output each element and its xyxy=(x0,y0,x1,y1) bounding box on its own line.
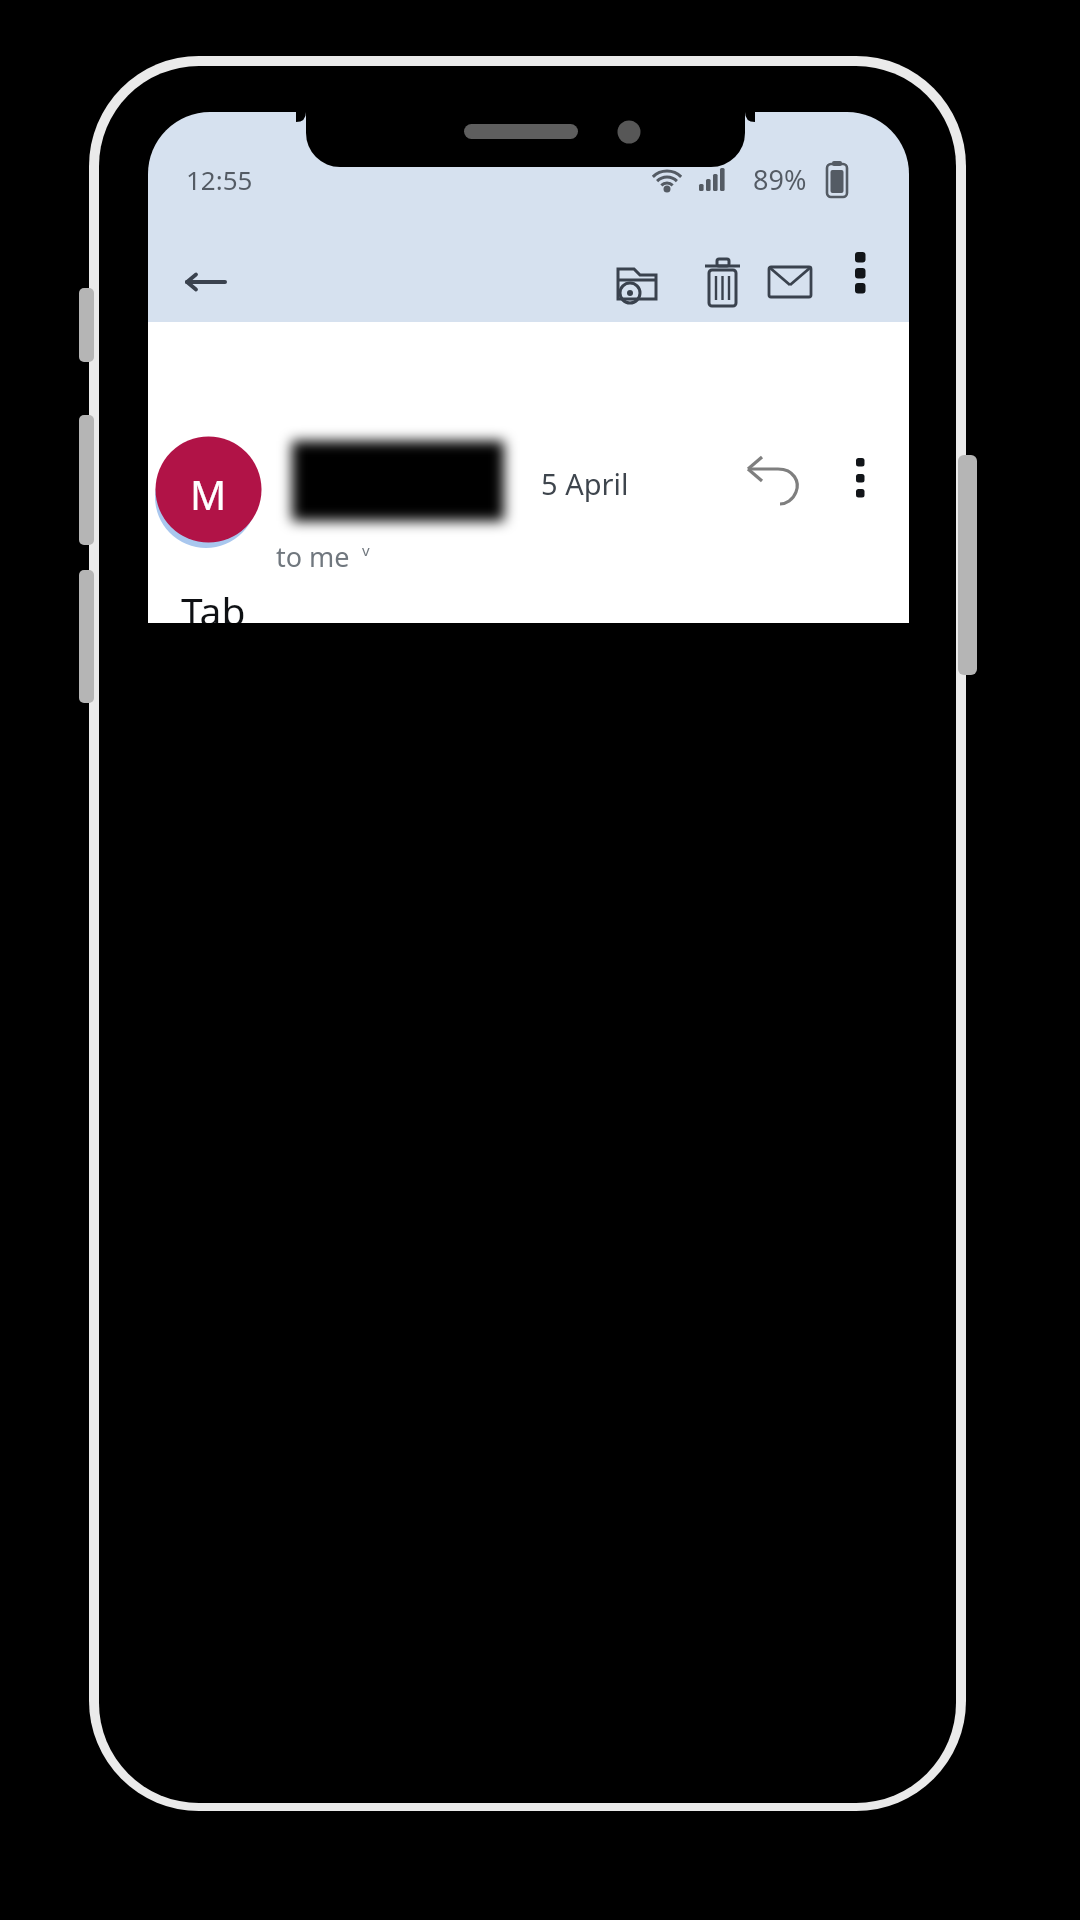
button[interactable]: M xyxy=(150,430,264,550)
staticText: 89% xyxy=(753,161,807,198)
staticText: M xyxy=(190,467,227,521)
staticText: Tab xyxy=(181,584,246,623)
staticText: to me xyxy=(276,538,350,572)
button[interactable] xyxy=(763,258,817,306)
button[interactable] xyxy=(696,253,750,311)
button[interactable]: to me xyxy=(276,538,396,572)
button[interactable] xyxy=(840,250,882,314)
staticText: 12:55 xyxy=(186,162,253,197)
button[interactable] xyxy=(736,446,812,518)
staticText: 5 April xyxy=(541,464,629,503)
staticText: v xyxy=(362,540,370,560)
button[interactable] xyxy=(610,255,664,309)
button[interactable] xyxy=(840,446,882,510)
button[interactable] xyxy=(170,252,230,312)
